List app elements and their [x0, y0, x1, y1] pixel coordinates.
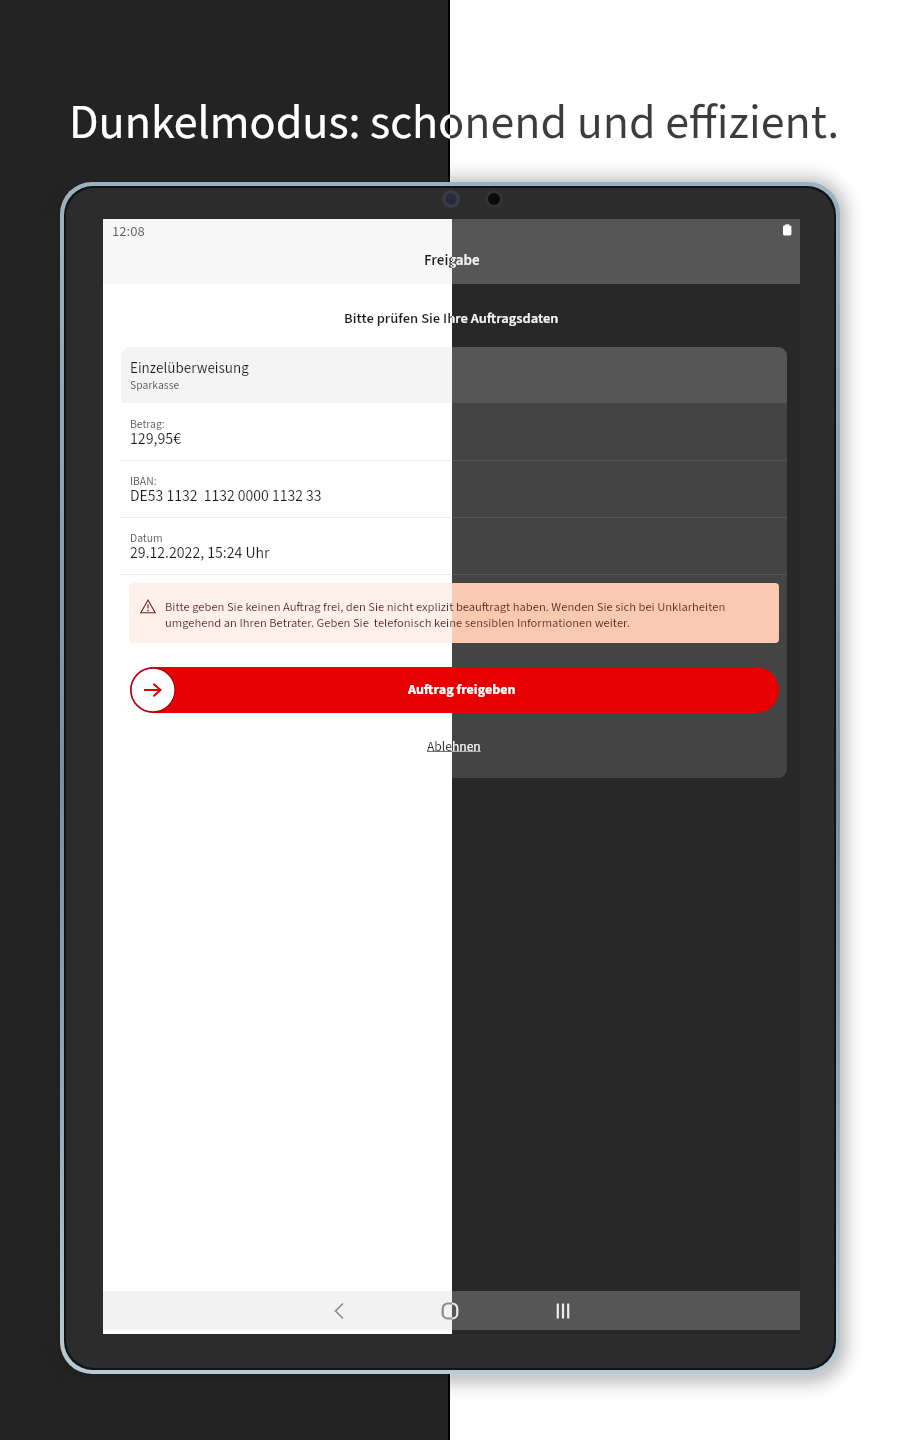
staticText: Auftrag freigeben — [408, 680, 516, 700]
button[interactable]: Ablehnen — [427, 737, 481, 756]
button[interactable]: Auftrag freigeben — [130, 667, 779, 713]
button[interactable]: Back — [318, 1291, 360, 1330]
staticText: 12:08 — [112, 221, 145, 242]
staticText: 129,95€ — [130, 428, 182, 450]
staticText: Datum — [130, 530, 163, 547]
staticText: Bitte geben Sie keinen Auftrag frei, den… — [165, 598, 755, 632]
staticText: Sparkasse — [130, 377, 180, 394]
staticText: Einzelüberweisung — [130, 358, 249, 379]
button[interactable]: Home — [429, 1291, 471, 1330]
staticText: IBAN: — [130, 473, 157, 490]
staticText: Bitte prüfen Sie Ihre Auftragsdaten — [344, 308, 559, 329]
staticText: Freigabe — [424, 250, 480, 271]
staticText: Sparkasse — [130, 377, 180, 394]
staticText: Bitte prüfen Sie Ihre Auftragsdaten — [344, 308, 559, 329]
staticText: Ablehnen — [427, 737, 481, 756]
button[interactable]: Recent apps — [542, 1291, 584, 1330]
staticText: Datum — [130, 530, 163, 547]
staticText: 29.12.2022, 15:24 Uhr — [130, 542, 270, 564]
button[interactable]: Recent apps — [542, 1291, 584, 1330]
staticText: IBAN: — [130, 473, 157, 490]
staticText: Auftrag freigeben — [408, 680, 516, 700]
staticText: DE53 1132 1132 0000 1132 33 — [130, 485, 322, 507]
staticText: Ablehnen — [427, 737, 481, 756]
staticText: 12:08 — [112, 221, 145, 242]
staticText: Bitte geben Sie keinen Auftrag frei, den… — [165, 598, 755, 632]
staticText: 129,95€ — [130, 428, 182, 450]
staticText: Freigabe — [424, 250, 480, 271]
button[interactable]: Ablehnen — [427, 737, 481, 756]
staticText: Betrag: — [130, 416, 165, 433]
staticText: Dunkelmodus: schonend und effizient. — [69, 89, 840, 157]
staticText: DE53 1132 1132 0000 1132 33 — [130, 485, 322, 507]
button[interactable]: Back — [318, 1291, 360, 1330]
staticText: Einzelüberweisung — [130, 358, 249, 379]
staticText: Betrag: — [130, 416, 165, 433]
button[interactable]: Auftrag freigeben — [130, 667, 779, 713]
staticText: 29.12.2022, 15:24 Uhr — [130, 542, 270, 564]
staticText: Dunkelmodus: schonend und effizient. — [69, 89, 840, 157]
button[interactable]: Home — [429, 1291, 471, 1330]
